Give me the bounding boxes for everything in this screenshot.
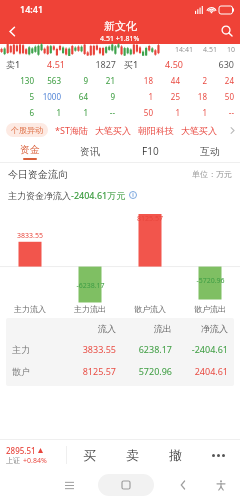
staticText: 主力流出	[74, 304, 106, 314]
staticText: 资讯	[80, 145, 100, 158]
staticText: 9	[61, 75, 88, 86]
staticText: 50	[207, 91, 234, 102]
button[interactable]: More	[224, 122, 240, 138]
button[interactable]: 主力流入	[0, 304, 60, 314]
staticText: 个股异动	[11, 125, 43, 135]
button[interactable]: 卖	[111, 440, 154, 470]
staticText: --	[88, 107, 115, 118]
staticText: 10	[227, 45, 236, 55]
staticText: 散户流入	[134, 304, 166, 314]
staticText: -2404.61万元	[71, 189, 126, 201]
staticText: 6238.17	[116, 343, 172, 355]
staticText: 1	[180, 107, 207, 118]
button[interactable]: 散户	[6, 360, 234, 382]
staticText: 4.50	[154, 58, 194, 70]
staticText: 563	[34, 75, 61, 86]
button[interactable]: *ST海陆	[55, 124, 88, 136]
staticText: -5720.96	[196, 276, 225, 286]
staticText: 18	[180, 91, 207, 102]
staticText: 5720.96	[116, 365, 172, 377]
staticText: 1	[153, 107, 180, 118]
staticText: 1	[34, 107, 61, 118]
staticText: 6	[6, 107, 34, 118]
button[interactable]: 主力	[6, 338, 234, 360]
button[interactable]: Accessibility	[212, 476, 230, 494]
staticText: 44	[153, 75, 180, 86]
button[interactable]: 2895.51	[0, 440, 66, 470]
staticText: 2895.51	[6, 445, 36, 456]
staticText: 1000	[34, 91, 61, 102]
staticText: -2404.61	[172, 343, 228, 355]
staticText: 上证	[6, 456, 20, 465]
button[interactable]: Back	[0, 19, 24, 43]
staticText: 4.51	[203, 45, 217, 55]
button[interactable]: 大笔买入	[95, 125, 131, 136]
staticText: 新文化	[104, 19, 137, 33]
staticText: 130	[6, 75, 34, 86]
staticText: 8125.57	[137, 214, 163, 224]
staticText: 今日资金流向	[8, 168, 68, 181]
staticText: 50	[125, 107, 153, 118]
button[interactable]: Recents	[60, 476, 78, 494]
staticText: 互动	[200, 145, 220, 158]
staticText: 2404.61	[172, 365, 228, 377]
staticText: 净流入	[172, 323, 228, 334]
staticText: 21	[88, 75, 115, 86]
staticText: 资金	[20, 143, 40, 156]
button[interactable]: Home	[98, 474, 154, 496]
staticText: -6238.17	[76, 281, 105, 291]
button[interactable]: 资讯	[60, 140, 120, 162]
staticText: 1	[125, 91, 153, 102]
staticText: F10	[142, 144, 159, 158]
staticText: 单位：万元	[192, 169, 232, 179]
button[interactable]: 撤	[154, 440, 197, 470]
staticText: 买1	[124, 58, 154, 70]
staticText: 9	[88, 91, 115, 102]
staticText: 卖	[126, 447, 139, 463]
staticText: 14:41	[175, 45, 193, 55]
staticText: 14:41	[20, 3, 44, 15]
staticText: 18	[125, 75, 153, 86]
staticText: 2	[180, 75, 207, 86]
button[interactable]: 主力流出	[60, 304, 120, 314]
staticText: 4.51 +1.81%	[100, 34, 140, 44]
button[interactable]: 互动	[180, 140, 240, 162]
staticText: 流入	[60, 323, 116, 334]
staticText: 3833.55	[60, 343, 116, 355]
button[interactable]: 资金	[0, 140, 60, 162]
staticText: 流出	[116, 323, 172, 334]
button[interactable]: More options	[197, 440, 240, 470]
staticText: --	[207, 107, 234, 118]
staticText: 25	[153, 91, 180, 102]
staticText: 64	[61, 91, 88, 102]
staticText: 买	[83, 447, 96, 463]
staticText: +0.84%	[23, 456, 47, 466]
staticText: 卖1	[6, 58, 36, 70]
staticText: 撤	[169, 447, 182, 463]
staticText: 24	[207, 75, 234, 86]
button[interactable]: 个股异动	[6, 123, 48, 137]
staticText: 主力	[12, 344, 60, 355]
button[interactable]: 散户流入	[120, 304, 180, 314]
staticText: 630	[194, 58, 234, 70]
button[interactable]: F10	[120, 140, 180, 162]
button[interactable]: 大笔买入	[181, 125, 217, 136]
button[interactable]: Back	[174, 476, 192, 494]
staticText: 3833.55	[17, 231, 43, 241]
button[interactable]: Info	[129, 191, 137, 199]
button[interactable]: Search	[214, 18, 240, 44]
staticText: 主力资金净流入	[8, 190, 71, 201]
staticText: 散户流出	[194, 304, 226, 314]
staticText: 1	[61, 107, 88, 118]
staticText: 8125.57	[60, 365, 116, 377]
staticText: 4.51	[36, 58, 76, 70]
button[interactable]: 散户流出	[180, 304, 240, 314]
button[interactable]: 朝阳科技	[138, 125, 174, 136]
staticText: 散户	[12, 366, 60, 377]
button[interactable]: 买	[67, 440, 111, 470]
staticText: 主力流入	[14, 304, 46, 314]
staticText: 1827	[76, 58, 116, 70]
staticText: 5	[6, 91, 34, 102]
